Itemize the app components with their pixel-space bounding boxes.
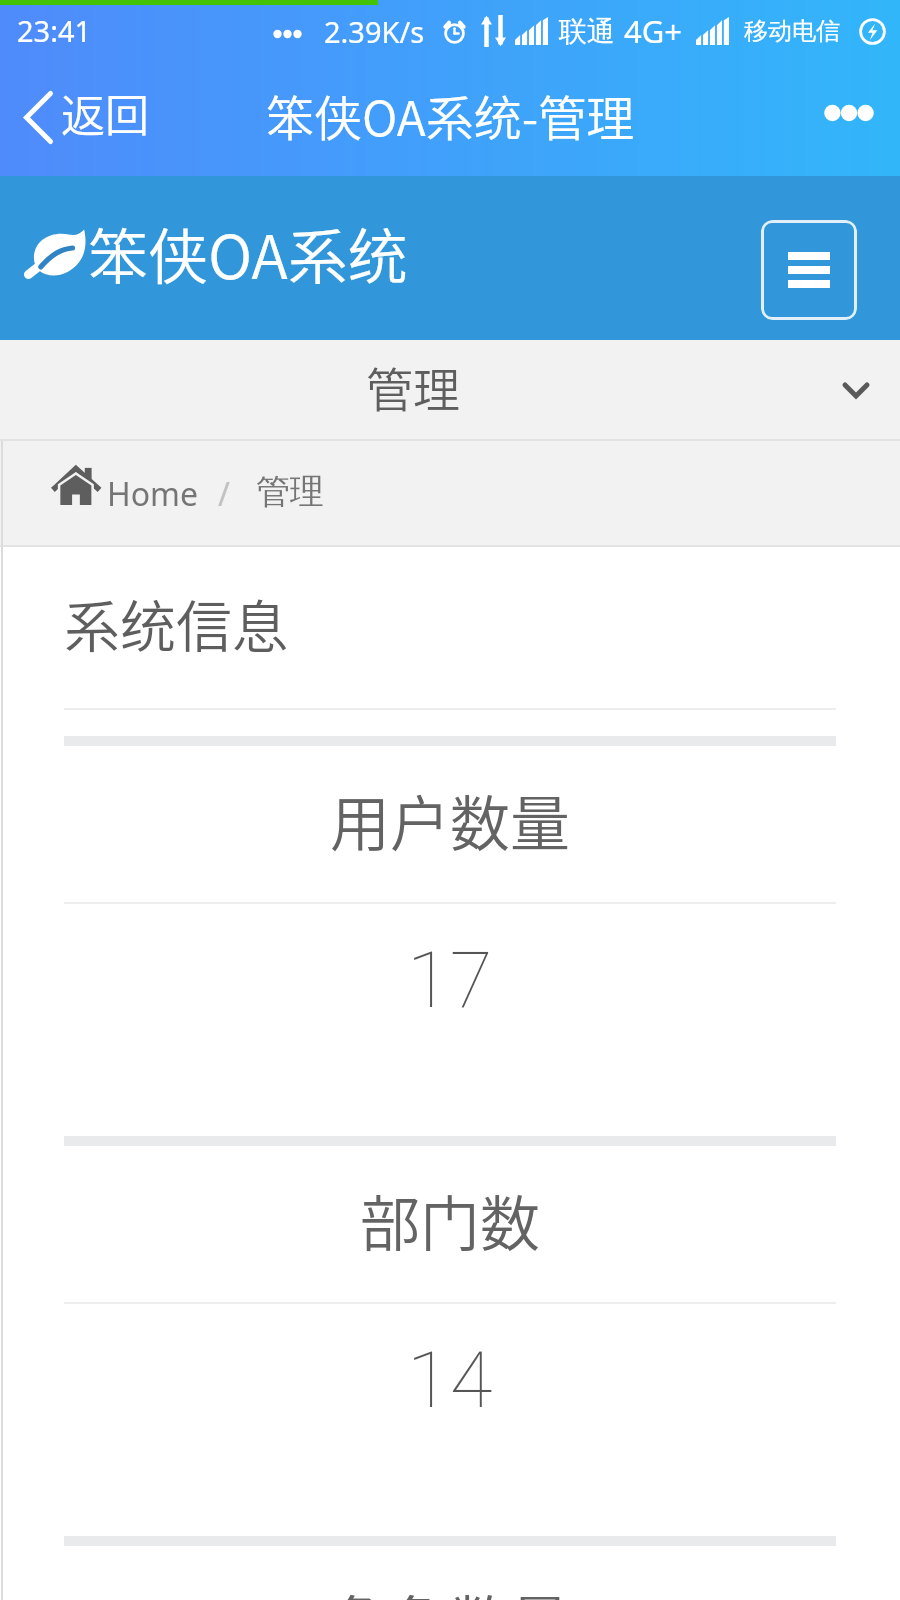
staticText: 管理 xyxy=(366,352,460,420)
staticText: / xyxy=(218,472,230,516)
staticText: 联通 xyxy=(559,14,615,49)
staticText: 14 xyxy=(407,1335,493,1426)
staticText: 笨侠OA系统-管理 xyxy=(266,80,635,150)
staticText: 2.39K/s xyxy=(324,12,425,51)
button[interactable]: More options xyxy=(791,78,900,156)
staticText: 23:41 xyxy=(17,11,92,50)
staticText: 角色数量 xyxy=(330,1576,570,1600)
button[interactable]: 笨侠OA系统 xyxy=(0,199,418,306)
staticText: 17 xyxy=(407,935,493,1026)
staticText: 部门数 xyxy=(360,1176,540,1263)
button[interactable]: 返回 xyxy=(0,73,167,161)
button[interactable]: Menu xyxy=(761,220,857,320)
staticText: 用户数量 xyxy=(330,776,570,863)
staticText: 返回 xyxy=(61,81,149,145)
button[interactable]: 管理 xyxy=(0,340,900,441)
staticText: 移动电信 xyxy=(744,16,840,46)
staticText: 4G+ xyxy=(624,10,683,52)
staticText: Home xyxy=(107,472,199,516)
staticText: 笨侠OA系统 xyxy=(88,209,408,296)
staticText: 系统信息 xyxy=(64,582,288,663)
staticText: 管理 xyxy=(256,470,324,513)
